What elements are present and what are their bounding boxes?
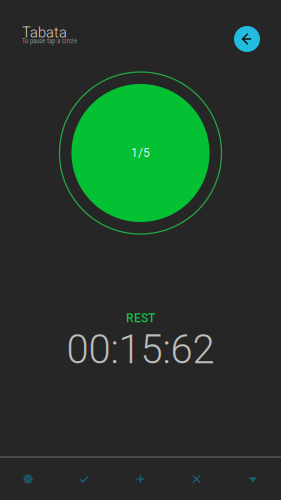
button[interactable]: 1/5 bbox=[71, 84, 209, 222]
staticText: REST bbox=[126, 311, 155, 325]
button[interactable]: Back bbox=[232, 24, 262, 54]
button[interactable]: Add bbox=[112, 458, 169, 500]
button[interactable]: Cancel bbox=[169, 458, 225, 500]
staticText: Tabata bbox=[22, 24, 67, 41]
button[interactable]: Collapse bbox=[225, 458, 281, 500]
staticText: 00:15:62 bbox=[66, 326, 214, 373]
staticText: 1/5 bbox=[131, 146, 150, 160]
button[interactable]: Settings bbox=[0, 458, 56, 500]
staticText: To pause tap a circle bbox=[22, 37, 77, 45]
button[interactable]: Done bbox=[56, 458, 112, 500]
